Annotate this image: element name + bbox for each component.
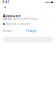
staticText: Signed in as user [6,22,30,26]
staticText: Change [26,29,37,33]
staticText: 9:41 [2,0,9,4]
button[interactable]: Change [26,29,37,33]
button[interactable]: Back [2,5,7,10]
staticText: Details [3,29,12,33]
staticText: Manage your preferences [3,17,38,21]
staticText: Account [3,13,21,18]
